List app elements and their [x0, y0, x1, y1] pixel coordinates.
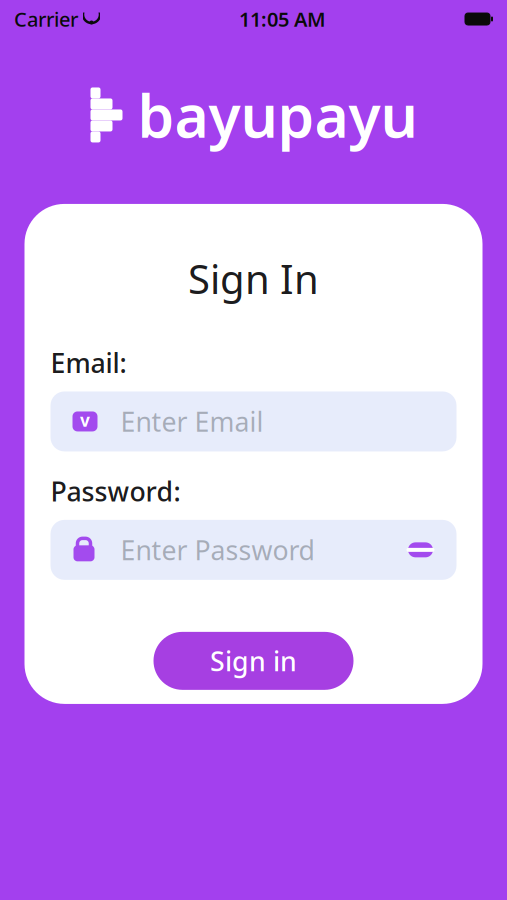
- staticText: Email:: [50, 345, 126, 380]
- staticText: v: [80, 408, 90, 431]
- staticText: Enter Password: [120, 532, 314, 567]
- staticText: Enter Email: [120, 404, 263, 439]
- button[interactable]: Sign in: [153, 632, 353, 690]
- button[interactable]: Enter Password: [50, 520, 456, 580]
- staticText: bayupayu: [137, 76, 417, 154]
- staticText: Carrier: [14, 6, 78, 32]
- staticText: Password:: [50, 473, 180, 509]
- staticText: Sign In: [188, 252, 319, 305]
- staticText: Sign in: [210, 643, 297, 678]
- button[interactable]: v: [50, 391, 456, 451]
- staticText: 11:05 AM: [239, 6, 326, 32]
